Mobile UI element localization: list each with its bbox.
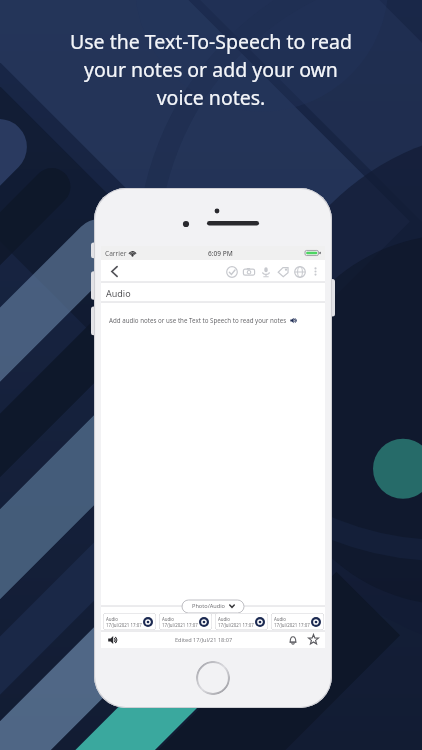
button[interactable]: Audio bbox=[271, 613, 324, 630]
staticText: 17/Jul/2021 17:07 bbox=[218, 622, 254, 628]
staticText: 17/Jul/2021 17:07 bbox=[106, 622, 142, 628]
button[interactable]: Back bbox=[101, 260, 127, 283]
button[interactable]: Record bbox=[257, 260, 274, 283]
button[interactable]: Play audio bbox=[101, 631, 125, 648]
button[interactable]: Photo/Audio bbox=[183, 600, 244, 612]
button[interactable]: Audio bbox=[159, 613, 212, 630]
button[interactable]: Done bbox=[223, 260, 240, 283]
button[interactable]: Audio bbox=[103, 613, 156, 630]
staticText: 17/Jul/2021 17:07 bbox=[274, 622, 310, 628]
button[interactable]: Reminder bbox=[283, 631, 303, 648]
staticText: Carrier bbox=[105, 249, 127, 258]
button[interactable]: More options bbox=[308, 260, 322, 283]
staticText: Photo/Audio bbox=[192, 602, 226, 610]
staticText: Use the Text-To-Speech to read your note… bbox=[70, 28, 352, 111]
staticText: Audio bbox=[162, 616, 175, 622]
button[interactable]: Audio bbox=[215, 613, 268, 630]
button[interactable]: Favourite bbox=[303, 631, 323, 648]
staticText: 17/Jul/2021 17:07 bbox=[162, 622, 198, 628]
button[interactable]: Camera bbox=[240, 260, 257, 283]
staticText: Add audio notes or use the Text to Speec… bbox=[109, 316, 287, 324]
button[interactable]: Tag bbox=[274, 260, 291, 283]
staticText: Audio bbox=[106, 616, 119, 622]
button[interactable]: Web bbox=[291, 260, 308, 283]
staticText: Audio bbox=[106, 287, 131, 299]
staticText: Edited 17/Jul/21 18:07 bbox=[175, 636, 233, 644]
staticText: Audio bbox=[274, 616, 287, 622]
staticText: 6:09 PM bbox=[208, 249, 233, 258]
button[interactable]: Home bbox=[196, 661, 230, 695]
staticText: Audio bbox=[218, 616, 231, 622]
